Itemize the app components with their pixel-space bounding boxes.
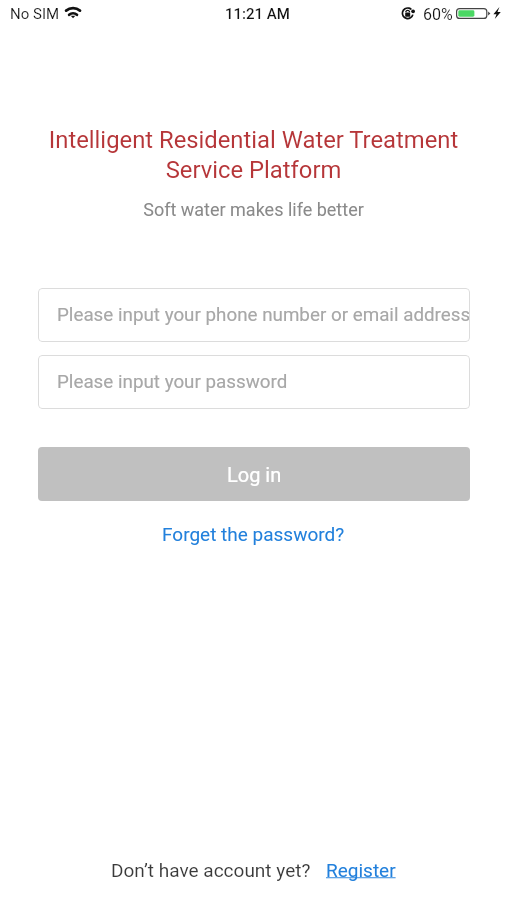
- staticText: Please input your password: [57, 371, 470, 393]
- button[interactable]: Log in: [38, 447, 470, 501]
- staticText: Intelligent Residential Water Treatment …: [0, 126, 507, 184]
- button[interactable]: Forget the password?: [156, 521, 351, 547]
- staticText: 11:21 AM: [225, 5, 290, 23]
- staticText: Log in: [227, 463, 282, 486]
- staticText: No SIM: [10, 5, 60, 23]
- staticText: Don’t have account yet?: [111, 859, 311, 881]
- staticText: 60%: [423, 5, 453, 24]
- other: Wi-Fi: [63, 4, 84, 20]
- other: Rotation lock: [400, 5, 416, 21]
- button[interactable]: Register: [326, 859, 396, 881]
- button[interactable]: Please input your password: [38, 355, 470, 409]
- staticText: Please input your phone number or email …: [57, 304, 470, 326]
- staticText: Soft water makes life better: [0, 199, 507, 220]
- other: Charging: [493, 7, 501, 19]
- other: Battery 60 percent: [456, 8, 492, 19]
- button[interactable]: Please input your phone number or email …: [38, 288, 470, 342]
